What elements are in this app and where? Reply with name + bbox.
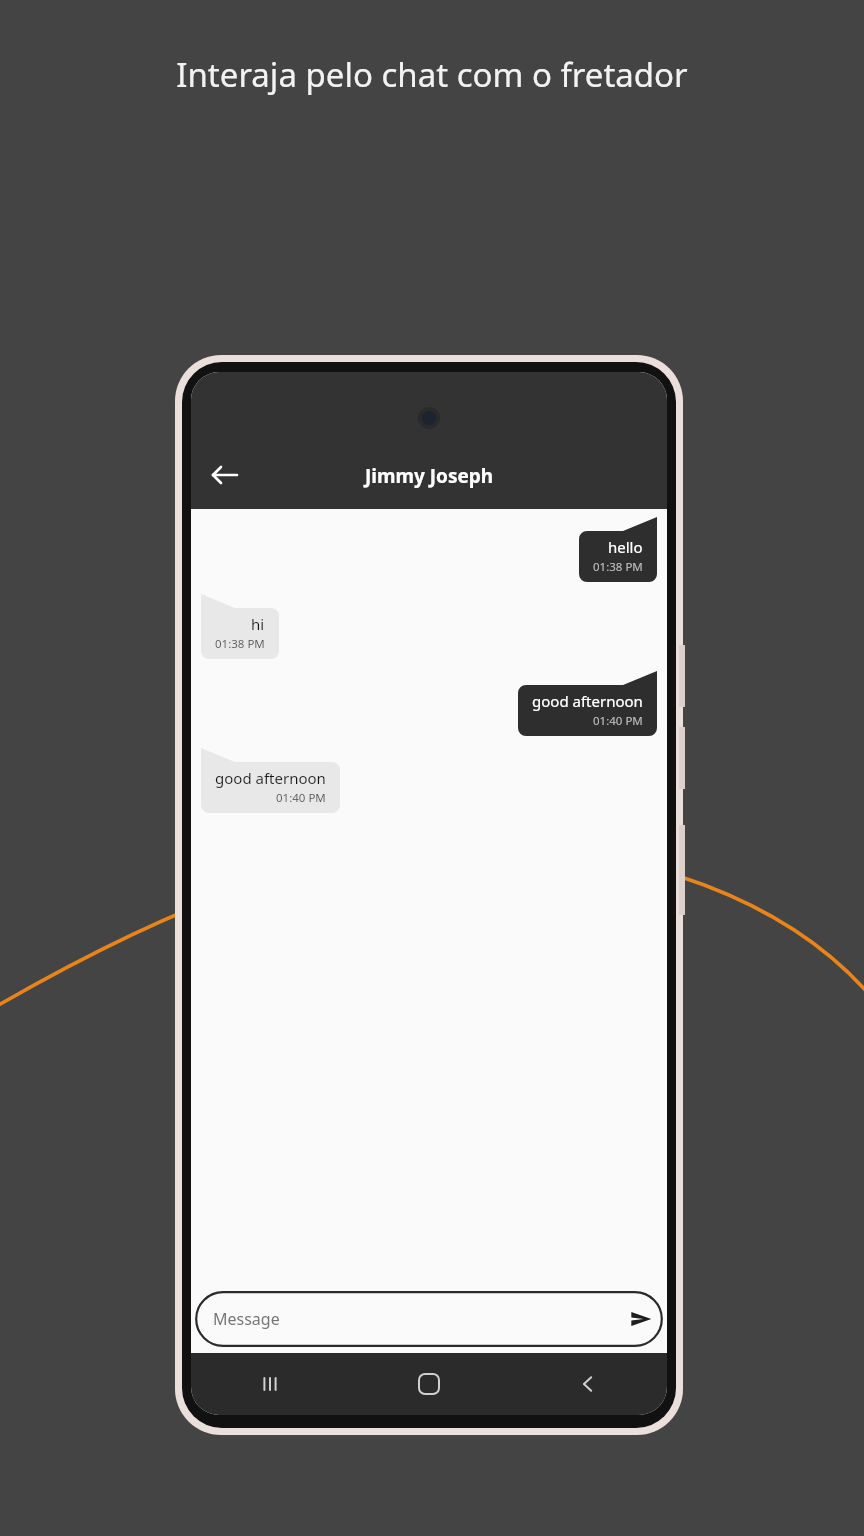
button[interactable]: hello [579,517,657,582]
button[interactable]: Back [199,449,251,501]
staticText: hi [251,614,265,634]
button[interactable]: Send [619,1297,663,1341]
staticText: Jimmy Joseph [365,463,494,489]
button[interactable]: good afternoon [201,748,340,813]
staticText: good afternoon [215,768,326,788]
staticText: 01:40 PM [593,713,643,729]
staticText: 01:40 PM [276,790,326,806]
staticText: good afternoon [532,691,643,711]
staticText: Message [213,1308,280,1330]
button[interactable]: good afternoon [518,671,657,736]
button[interactable]: Recents [191,1353,349,1415]
button[interactable]: Message [195,1291,663,1347]
button[interactable]: hi [201,594,279,659]
staticText: hello [608,537,643,557]
button[interactable]: Home [349,1353,508,1415]
staticText: 01:38 PM [215,636,265,652]
staticText: Interaja pelo chat com o fretador [176,52,688,97]
button[interactable]: Back [508,1353,667,1415]
staticText: 01:38 PM [593,559,643,575]
